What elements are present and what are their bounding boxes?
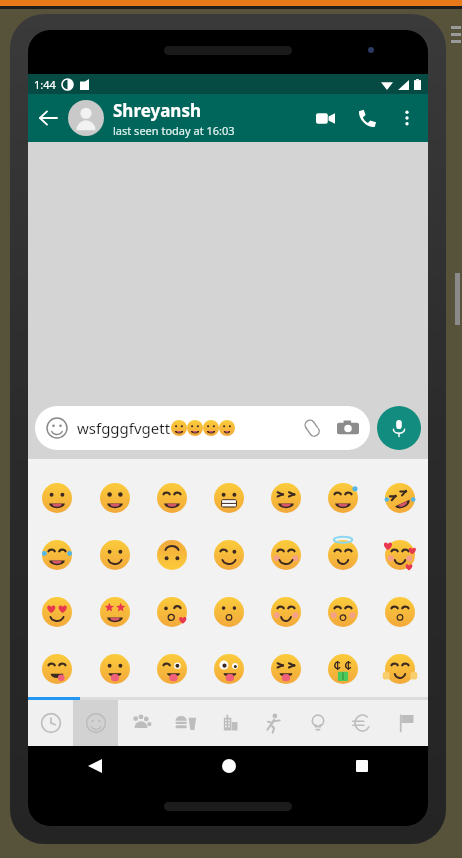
button[interactable]: Flags <box>384 700 428 746</box>
button[interactable]: More options <box>388 99 426 137</box>
button[interactable]: Objects <box>296 700 340 746</box>
button[interactable]: Emoji <box>28 640 86 697</box>
button[interactable]: Emoji <box>86 469 143 526</box>
button[interactable]: Back <box>28 98 68 138</box>
button[interactable]: Places <box>208 700 252 746</box>
staticText: wsfgggfvgett <box>77 418 171 438</box>
button[interactable]: Emoji <box>200 640 257 697</box>
button[interactable]: Emoji <box>314 640 371 697</box>
button[interactable]: Emoji <box>35 406 370 450</box>
button[interactable]: Emoji <box>28 526 86 583</box>
button[interactable]: Emoji <box>28 583 86 640</box>
button[interactable]: Emoji <box>28 469 86 526</box>
button[interactable]: Emoji <box>314 469 371 526</box>
button[interactable]: Emoji <box>314 583 371 640</box>
button[interactable]: Emoji <box>86 583 143 640</box>
button[interactable]: Call <box>346 97 388 139</box>
button[interactable]: Attach <box>301 417 323 439</box>
button[interactable]: Emoji <box>200 526 257 583</box>
button[interactable]: Emoji <box>257 640 314 697</box>
button[interactable]: Emoji <box>314 526 371 583</box>
button[interactable]: Contact photo <box>68 100 104 136</box>
button[interactable]: Emoji <box>371 583 428 640</box>
staticText: 1:44 <box>34 77 56 92</box>
button[interactable]: Emoji <box>371 640 428 697</box>
button[interactable]: Emoji <box>371 469 428 526</box>
button[interactable]: Home <box>162 746 295 786</box>
button[interactable]: Smileys <box>73 700 118 746</box>
button[interactable]: Emoji <box>143 469 200 526</box>
button[interactable]: Camera <box>337 417 359 439</box>
button[interactable]: Emoji <box>371 526 428 583</box>
button[interactable]: Emoji <box>257 526 314 583</box>
button[interactable]: Recent <box>28 700 73 746</box>
button[interactable]: Emoji <box>86 640 143 697</box>
button[interactable]: Voice message <box>377 406 421 450</box>
staticText: last seen today at 16:03 <box>113 123 235 138</box>
button[interactable]: Animals <box>118 700 163 746</box>
button[interactable]: Emoji <box>257 583 314 640</box>
button[interactable]: Recent apps <box>295 746 428 786</box>
button[interactable]: Emoji <box>143 640 200 697</box>
button[interactable]: Back <box>28 746 162 786</box>
button[interactable]: Food <box>163 700 208 746</box>
button[interactable]: Emoji <box>257 469 314 526</box>
button[interactable]: Emoji <box>46 417 68 439</box>
button[interactable]: Emoji <box>143 526 200 583</box>
button[interactable]: Emoji <box>86 526 143 583</box>
button[interactable]: Emoji <box>143 583 200 640</box>
button[interactable]: Emoji <box>200 583 257 640</box>
button[interactable]: Activities <box>252 700 296 746</box>
button[interactable]: Symbols <box>340 700 384 746</box>
staticText: Shreyansh <box>113 99 202 122</box>
button[interactable]: Shreyansh <box>113 99 304 138</box>
button[interactable]: Emoji <box>200 469 257 526</box>
button[interactable]: Video call <box>304 97 346 139</box>
